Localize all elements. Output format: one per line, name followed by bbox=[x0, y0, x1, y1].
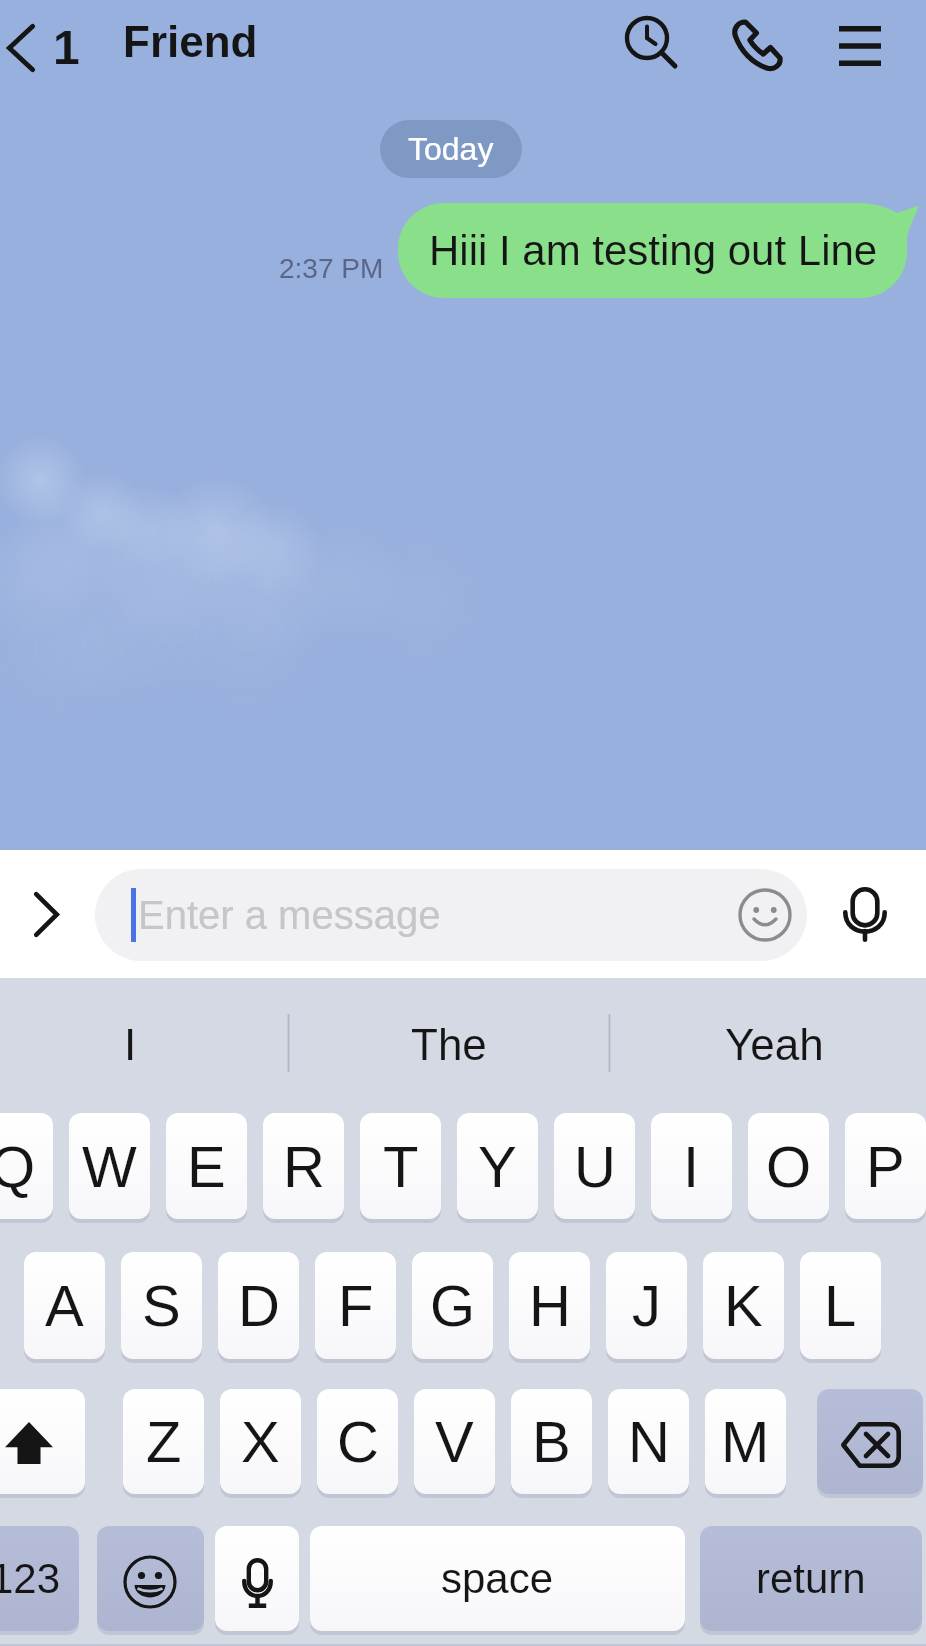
staticText: L bbox=[824, 1273, 857, 1338]
button[interactable]: K bbox=[703, 1252, 784, 1359]
staticText: C bbox=[337, 1409, 379, 1474]
button[interactable]: X bbox=[220, 1389, 301, 1494]
button[interactable]: T bbox=[360, 1113, 441, 1219]
staticText: 2:37 PM bbox=[279, 253, 384, 284]
button[interactable]: Search history bbox=[609, 2, 697, 90]
staticText: 1 bbox=[53, 21, 80, 75]
button[interactable]: space bbox=[310, 1526, 685, 1631]
button[interactable]: D bbox=[218, 1252, 299, 1359]
staticText: G bbox=[430, 1273, 476, 1338]
button[interactable]: B bbox=[511, 1389, 592, 1494]
staticText: I bbox=[683, 1134, 700, 1199]
button[interactable]: R bbox=[263, 1113, 344, 1219]
staticText: The bbox=[411, 1020, 487, 1069]
staticText: O bbox=[766, 1134, 812, 1199]
button[interactable]: J bbox=[606, 1252, 687, 1359]
button[interactable]: Menu bbox=[816, 2, 904, 90]
button[interactable] bbox=[817, 1389, 923, 1494]
button[interactable]: return bbox=[700, 1526, 922, 1631]
staticText: K bbox=[724, 1273, 763, 1338]
button[interactable]: Voice message bbox=[819, 868, 911, 960]
button[interactable]: I bbox=[651, 1113, 732, 1219]
staticText: H bbox=[529, 1273, 571, 1338]
button[interactable]: 123 bbox=[0, 1526, 79, 1631]
staticText: R bbox=[283, 1134, 325, 1199]
button[interactable] bbox=[97, 1526, 204, 1631]
button[interactable] bbox=[0, 1389, 85, 1494]
button[interactable] bbox=[215, 1526, 299, 1631]
button[interactable]: Yeah bbox=[616, 978, 926, 1113]
button[interactable]: Q bbox=[0, 1113, 53, 1219]
staticText: W bbox=[82, 1134, 137, 1199]
staticText: F bbox=[338, 1273, 374, 1338]
staticText: X bbox=[241, 1409, 280, 1474]
staticText: return bbox=[756, 1555, 866, 1602]
staticText: D bbox=[238, 1273, 280, 1338]
staticText: V bbox=[435, 1409, 474, 1474]
button[interactable]: Emoji bbox=[738, 888, 792, 942]
staticText: Q bbox=[0, 1134, 36, 1199]
button[interactable]: U bbox=[554, 1113, 635, 1219]
staticText: S bbox=[142, 1273, 181, 1338]
button[interactable]: C bbox=[317, 1389, 398, 1494]
staticText: Enter a message bbox=[138, 893, 441, 938]
button[interactable]: A bbox=[24, 1252, 105, 1359]
button[interactable]: Z bbox=[123, 1389, 204, 1494]
staticText: Friend bbox=[123, 17, 258, 66]
button[interactable]: W bbox=[69, 1113, 150, 1219]
button[interactable]: H bbox=[509, 1252, 590, 1359]
staticText: Today bbox=[408, 131, 494, 167]
staticText: A bbox=[45, 1273, 84, 1338]
staticText: B bbox=[532, 1409, 571, 1474]
button[interactable]: F bbox=[315, 1252, 396, 1359]
button[interactable]: Today bbox=[380, 120, 522, 178]
staticText: J bbox=[632, 1273, 661, 1338]
button[interactable]: V bbox=[414, 1389, 495, 1494]
button[interactable]: Y bbox=[457, 1113, 538, 1219]
button[interactable]: Friend bbox=[123, 17, 258, 66]
staticText: Hiii I am testing out Line bbox=[429, 227, 878, 274]
button[interactable]: M bbox=[705, 1389, 786, 1494]
button[interactable]: O bbox=[748, 1113, 829, 1219]
staticText: space bbox=[441, 1555, 554, 1602]
button[interactable]: The bbox=[288, 978, 609, 1113]
button[interactable]: More options bbox=[0, 868, 92, 960]
button[interactable]: S bbox=[121, 1252, 202, 1359]
staticText: Y bbox=[478, 1134, 517, 1199]
staticText: U bbox=[574, 1134, 616, 1199]
staticText: Z bbox=[146, 1409, 182, 1474]
staticText: M bbox=[721, 1409, 770, 1474]
staticText: 123 bbox=[0, 1555, 61, 1602]
staticText: I bbox=[124, 1020, 137, 1069]
button[interactable]: L bbox=[800, 1252, 881, 1359]
staticText: Yeah bbox=[725, 1020, 824, 1069]
button[interactable]: Call bbox=[713, 1, 801, 89]
staticText: T bbox=[383, 1134, 419, 1199]
button[interactable]: 1 bbox=[0, 3, 88, 93]
button[interactable]: N bbox=[608, 1389, 689, 1494]
button[interactable]: P bbox=[845, 1113, 926, 1219]
staticText: N bbox=[628, 1409, 670, 1474]
button[interactable]: E bbox=[166, 1113, 247, 1219]
button[interactable]: I bbox=[0, 978, 288, 1113]
staticText: E bbox=[187, 1134, 226, 1199]
staticText: P bbox=[866, 1134, 905, 1199]
button[interactable]: G bbox=[412, 1252, 493, 1359]
button[interactable]: Enter a message bbox=[95, 869, 807, 961]
